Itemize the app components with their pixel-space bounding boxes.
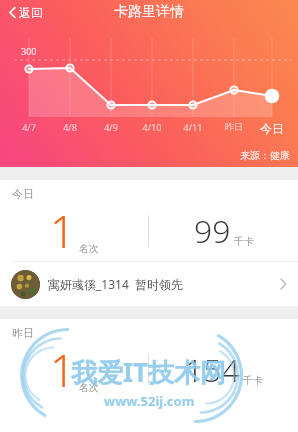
button[interactable]: 返回 [5, 2, 47, 23]
staticText: 1 [50, 340, 76, 400]
staticText: 1 [50, 201, 76, 261]
staticText: 今日 [12, 187, 34, 201]
staticText: 4/10 [132, 121, 172, 133]
other: 查看详情 [280, 278, 287, 290]
staticText: 卡路里详情 [114, 3, 184, 21]
staticText: 来源：健康 [240, 149, 290, 162]
staticText: 千卡 [243, 374, 263, 387]
staticText: 4/8 [50, 121, 90, 133]
staticText: 154 [185, 348, 240, 392]
staticText: 99 [194, 209, 231, 253]
staticText: 名次 [79, 381, 99, 394]
staticText: 返回 [19, 5, 43, 20]
staticText: 寓妍彧徯_1314 暂时领先 [48, 276, 184, 292]
staticText: 4/7 [9, 121, 49, 133]
staticText: www.52ij.com [104, 392, 195, 410]
staticText: 我爱IT技术网 [71, 354, 227, 390]
staticText: 千卡 [234, 235, 254, 248]
button[interactable]: 寓妍彧徯_1314 暂时领先 [0, 262, 298, 306]
staticText: 4/9 [91, 121, 131, 133]
staticText: 300 [21, 45, 37, 57]
staticText: 昨日 [214, 121, 254, 132]
staticText: 昨日 [12, 326, 34, 340]
staticText: 今日 [252, 121, 292, 136]
staticText: 4/11 [173, 121, 213, 133]
staticText: 名次 [79, 242, 99, 255]
